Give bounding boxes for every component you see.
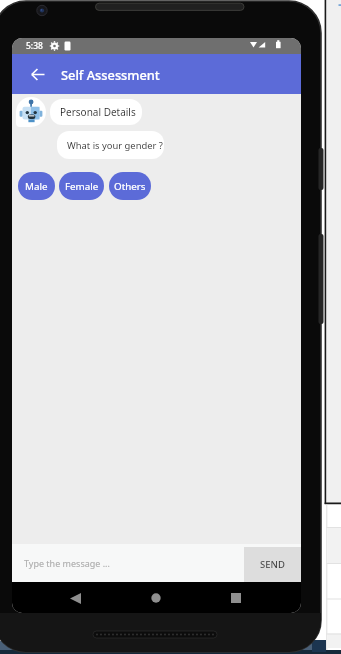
staticText: SEND <box>260 558 285 571</box>
staticText: Female <box>65 180 99 193</box>
staticText: Personal Details <box>60 105 136 119</box>
button[interactable] <box>144 586 168 610</box>
staticText: Type the message ... <box>24 557 110 569</box>
button[interactable] <box>18 54 58 94</box>
button[interactable]: Type the message ... <box>12 544 301 582</box>
button[interactable] <box>224 586 248 610</box>
button[interactable]: Personal Details <box>50 99 142 125</box>
button[interactable]: SEND <box>244 547 301 582</box>
staticText: Others <box>114 180 146 193</box>
button[interactable]: Others <box>109 172 151 200</box>
staticText: Self Assessment <box>61 66 160 83</box>
button[interactable]: Female <box>59 172 104 200</box>
staticText: Male <box>25 180 48 193</box>
staticText: 5:38 <box>26 40 43 52</box>
button[interactable]: What is your gender ? <box>57 131 164 159</box>
staticText: What is your gender ? <box>67 139 163 152</box>
button[interactable] <box>63 586 87 610</box>
button[interactable]: Male <box>18 172 55 200</box>
